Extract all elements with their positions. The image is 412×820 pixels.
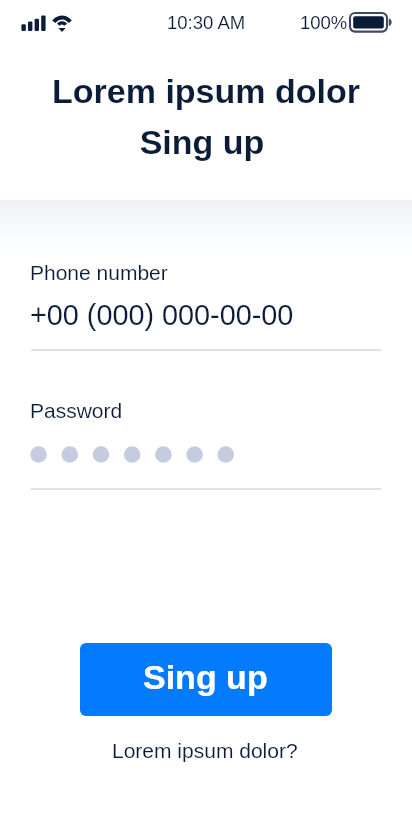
button[interactable]: Phone number	[31, 255, 381, 350]
staticText: 100%	[300, 12, 348, 33]
staticText: Lorem ipsum dolor?	[112, 739, 298, 762]
staticText: Lorem ipsum dolor	[0, 72, 412, 110]
staticText: Sing up	[0, 123, 408, 161]
staticText: +00 (000) 000-00-00	[30, 299, 294, 331]
staticText: Sing up	[143, 658, 268, 696]
button[interactable]: Lorem ipsum dolor?	[102, 734, 308, 767]
staticText: 10:30 AM	[167, 12, 246, 33]
staticText: Password	[30, 399, 123, 422]
staticText: Phone number	[30, 261, 168, 284]
other: Battery full	[350, 13, 394, 33]
button[interactable]: Sing up	[80, 643, 332, 716]
other: Cellular signal and Wi-Fi status	[0, 0, 412, 46]
button[interactable]: Password	[31, 393, 381, 489]
